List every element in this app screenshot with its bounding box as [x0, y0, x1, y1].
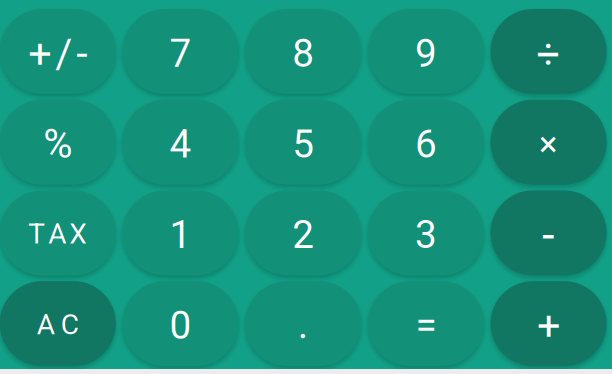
staticText: = [415, 303, 436, 348]
staticText: 6 [415, 121, 437, 167]
staticText: ÷ [537, 29, 561, 78]
staticText: 4 [169, 121, 191, 167]
staticText: 0 [169, 303, 191, 348]
staticText: 9 [415, 31, 437, 76]
button[interactable]: Divide [490, 9, 607, 94]
button[interactable]: 6 [368, 100, 484, 185]
staticText: T A X [28, 217, 87, 250]
button[interactable]: 9 [368, 9, 484, 94]
button[interactable]: Multiply [490, 100, 607, 185]
staticText: - [542, 208, 555, 261]
staticText: 3 [415, 212, 437, 257]
button[interactable]: 5 [245, 100, 361, 185]
button[interactable]: 2 [245, 190, 361, 275]
button[interactable]: Minus [490, 190, 607, 275]
button[interactable]: . [245, 281, 361, 366]
staticText: 5 [292, 121, 314, 167]
staticText: 8 [292, 31, 314, 76]
staticText: A C [37, 308, 79, 341]
staticText: 2 [292, 212, 314, 257]
staticText: 7 [169, 31, 191, 76]
staticText: + [537, 301, 560, 350]
staticText: + / - [28, 29, 87, 78]
button[interactable]: % [0, 100, 116, 185]
staticText: × [539, 124, 558, 164]
button[interactable]: TAX [0, 190, 116, 275]
staticText: 1 [169, 212, 191, 257]
staticText: . [298, 301, 309, 348]
button[interactable]: 4 [122, 100, 239, 185]
button[interactable]: 0 [122, 281, 239, 366]
button[interactable]: Plus minus [0, 9, 116, 94]
button[interactable]: 1 [122, 190, 239, 275]
button[interactable]: 8 [245, 9, 361, 94]
button[interactable]: Plus [490, 281, 607, 366]
button[interactable]: = [368, 281, 484, 366]
button[interactable]: 7 [122, 9, 239, 94]
staticText: % [43, 121, 72, 168]
button[interactable]: 3 [368, 190, 484, 275]
button[interactable]: AC [0, 281, 116, 366]
